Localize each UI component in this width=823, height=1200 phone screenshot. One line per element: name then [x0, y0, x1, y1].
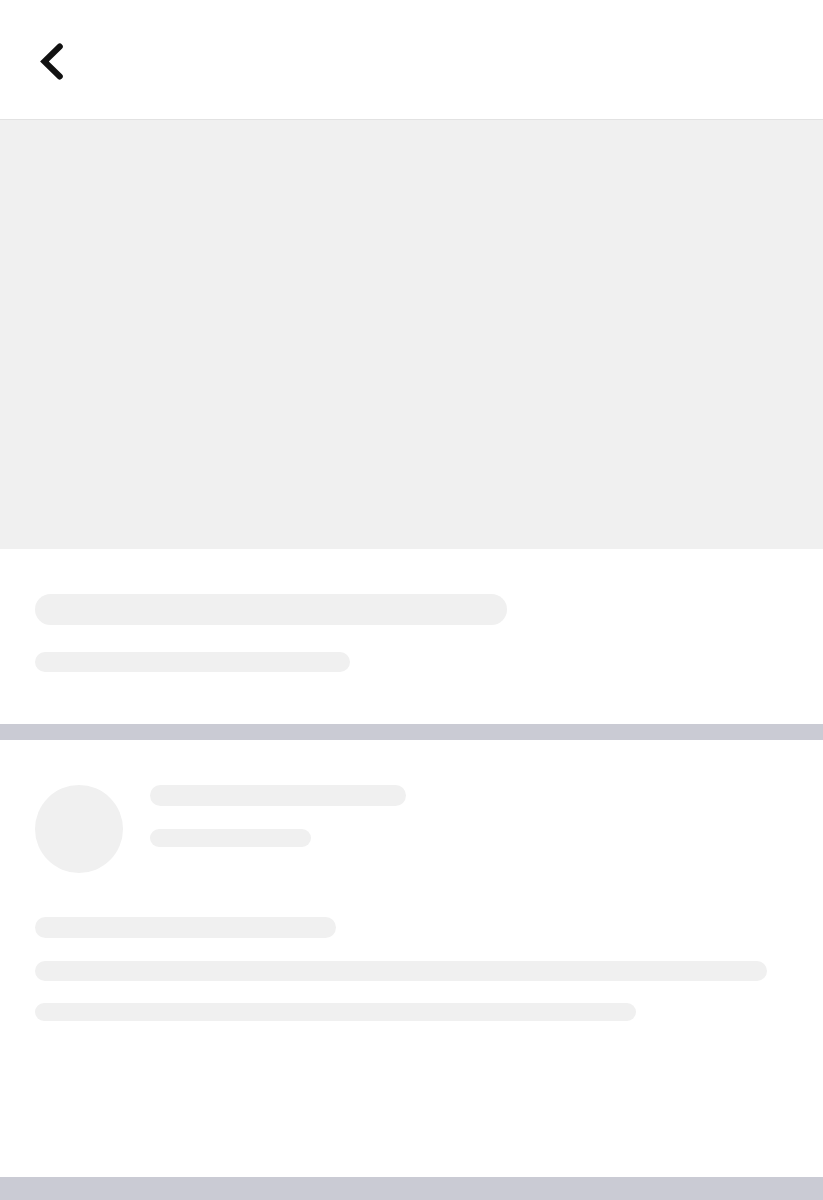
button[interactable]: Back: [23, 24, 83, 84]
